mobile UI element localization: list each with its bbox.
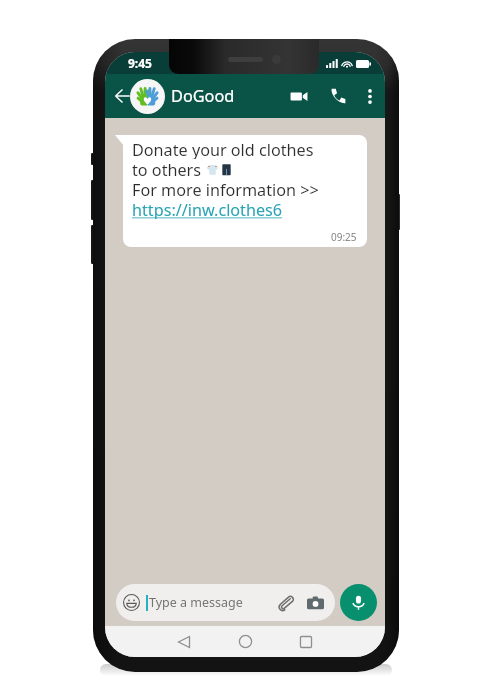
button[interactable]: Back <box>105 74 130 118</box>
button[interactable]: Video call <box>276 74 321 118</box>
staticText: 09:25 <box>331 230 357 244</box>
button[interactable]: Home <box>230 626 260 657</box>
staticText: Donate your old clothes <box>132 139 314 159</box>
staticText: to others <box>132 159 206 179</box>
button[interactable]: https://inw.clothes6 <box>132 199 283 219</box>
button[interactable]: Recent apps <box>291 626 321 657</box>
staticText: Type a message <box>149 594 243 611</box>
staticText: 9:45 <box>128 55 152 71</box>
button[interactable]: More options <box>354 74 385 118</box>
button[interactable]: Voice message <box>340 584 377 621</box>
button[interactable]: Back <box>169 626 199 657</box>
button[interactable]: Donate your old clothes <box>123 135 367 247</box>
button[interactable]: DoGood <box>171 85 235 107</box>
staticText: For more information >> <box>132 179 319 199</box>
button[interactable]: Type a message <box>116 584 335 621</box>
button[interactable]: Profile photo <box>130 79 165 114</box>
button[interactable]: Voice call <box>321 74 354 118</box>
